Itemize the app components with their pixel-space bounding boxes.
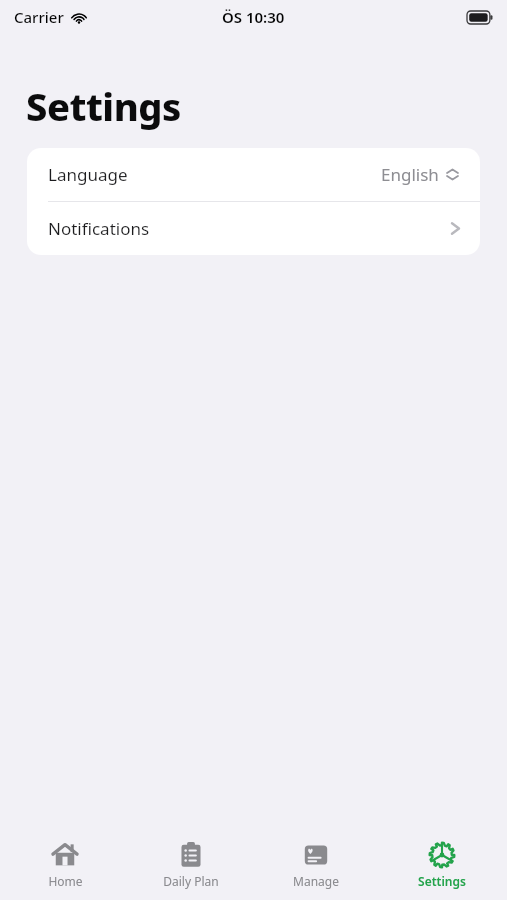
staticText: Settings bbox=[418, 873, 466, 889]
button[interactable]: Notifications bbox=[27, 202, 480, 255]
other: Open notifications bbox=[450, 219, 461, 238]
button[interactable]: Daily Plan bbox=[131, 832, 251, 889]
staticText: Carrier bbox=[14, 7, 64, 27]
staticText: Home bbox=[48, 873, 83, 889]
staticText: Daily Plan bbox=[163, 873, 219, 889]
staticText: Notifications bbox=[48, 217, 150, 240]
staticText: English bbox=[381, 163, 439, 186]
staticText: Manage bbox=[293, 873, 339, 889]
button[interactable]: Settings bbox=[382, 832, 502, 889]
button[interactable]: Home bbox=[5, 832, 125, 889]
button[interactable]: Manage bbox=[256, 832, 376, 889]
staticText: Language bbox=[48, 163, 128, 186]
staticText: Settings bbox=[26, 80, 181, 132]
staticText: ÖS 10:30 bbox=[222, 7, 285, 27]
button[interactable]: Language bbox=[27, 148, 480, 201]
